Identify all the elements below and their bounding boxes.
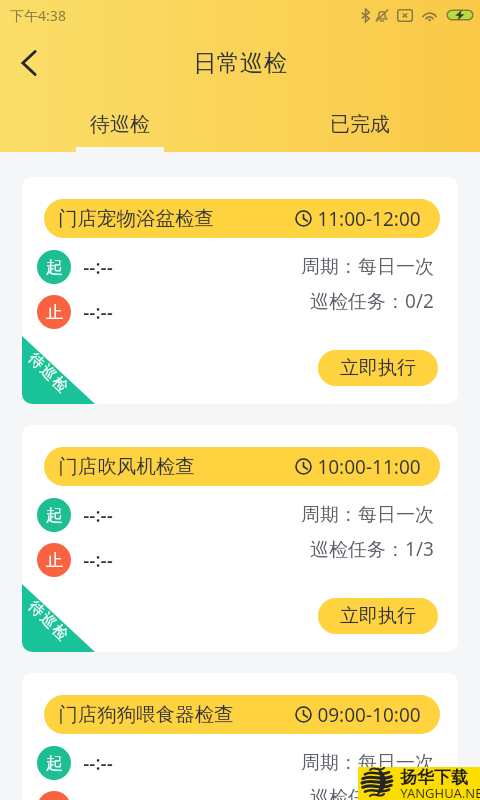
staticText: YANGHUA.NET (400, 784, 480, 800)
staticText: 起 (46, 257, 63, 278)
staticText: 待巡检 (90, 112, 150, 137)
staticText: 巡检任务：1/3 (310, 536, 434, 562)
staticText: 扬华下载 (400, 767, 468, 788)
button[interactable]: Back (7, 41, 51, 85)
staticText: --:-- (83, 502, 113, 528)
staticText: --:-- (83, 299, 113, 325)
button[interactable]: 待巡检 (0, 96, 240, 152)
staticText: 门店吹风机检查 (58, 454, 195, 479)
button[interactable]: 立即执行 (318, 598, 438, 634)
button[interactable]: 待巡检 (22, 177, 458, 404)
staticText: --:-- (83, 254, 113, 280)
staticText: 起 (46, 753, 63, 774)
staticText: 立即执行 (340, 604, 416, 628)
button[interactable]: 已完成 (240, 96, 480, 152)
staticText: --:-- (83, 750, 113, 776)
button[interactable]: 待巡检 (22, 425, 458, 652)
staticText: 巡检任务：0/1 (310, 784, 434, 800)
staticText: 待巡检 (24, 349, 73, 398)
staticText: 日常巡检 (193, 48, 287, 78)
button[interactable]: 待巡检 (22, 673, 458, 800)
staticText: 09:00-10:00 (317, 702, 421, 728)
staticText: 周期：每日一次 (301, 503, 434, 527)
staticText: 止 (46, 302, 63, 323)
staticText: --:-- (83, 547, 113, 573)
staticText: 巡检任务：0/2 (310, 288, 434, 314)
staticText: 10:00-11:00 (317, 454, 421, 480)
staticText: 门店狗狗喂食器检查 (58, 702, 234, 727)
staticText: 下午4:38 (10, 6, 66, 25)
staticText: 已完成 (330, 112, 390, 137)
staticText: 周期：每日一次 (301, 255, 434, 279)
staticText: 11:00-12:00 (317, 206, 421, 232)
staticText: 门店宠物浴盆检查 (58, 206, 214, 231)
staticText: 止 (46, 550, 63, 571)
staticText: 待巡检 (24, 597, 73, 646)
button[interactable]: 立即执行 (318, 350, 438, 386)
staticText: 周期：每日一次 (301, 751, 434, 775)
staticText: 起 (46, 505, 63, 526)
staticText: 立即执行 (340, 356, 416, 380)
